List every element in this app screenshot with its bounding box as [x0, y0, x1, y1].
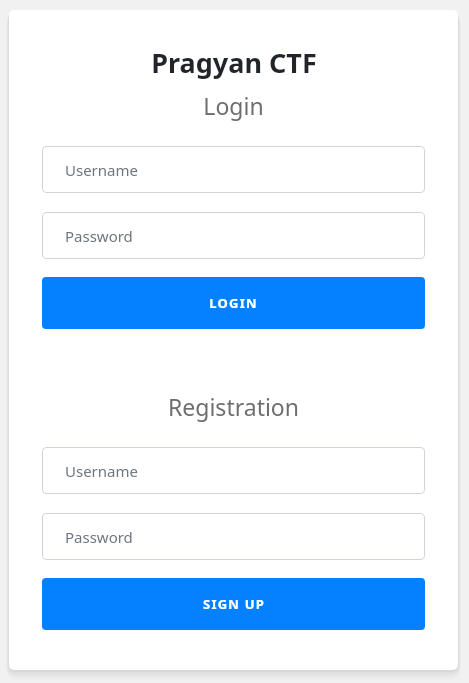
staticText: Username	[65, 461, 138, 481]
button[interactable]: SIGN UP	[42, 578, 425, 630]
staticText: Password	[65, 226, 133, 246]
button[interactable]: Username	[42, 146, 425, 193]
staticText: Password	[65, 527, 133, 547]
staticText: Registration	[168, 391, 299, 422]
button[interactable]: LOGIN	[42, 277, 425, 329]
button[interactable]: Password	[42, 513, 425, 560]
button[interactable]: Username	[42, 447, 425, 494]
staticText: LOGIN	[209, 294, 258, 312]
staticText: Login	[203, 90, 264, 121]
staticText: Username	[65, 160, 138, 180]
staticText: SIGN UP	[203, 595, 265, 613]
button[interactable]: Password	[42, 212, 425, 259]
staticText: Pragyan CTF	[151, 44, 317, 81]
